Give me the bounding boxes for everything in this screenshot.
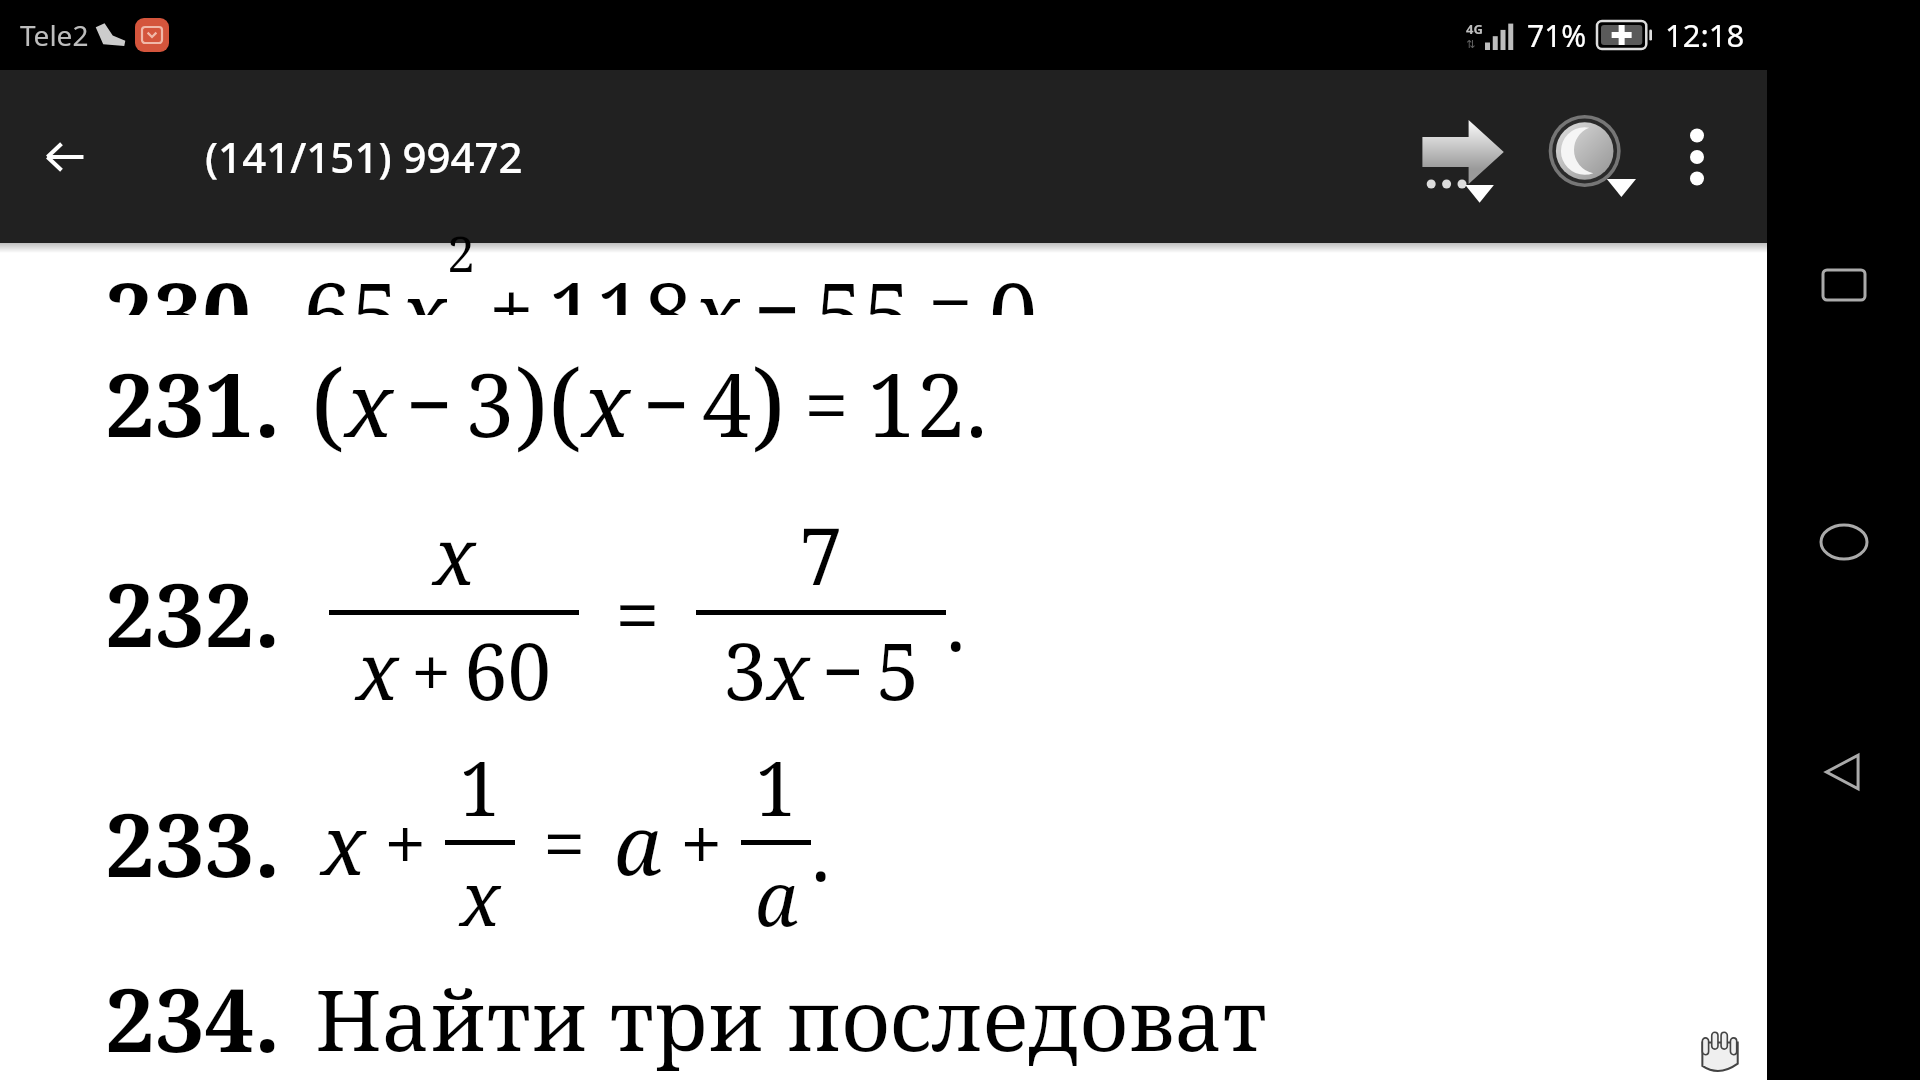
staticText: . [946, 568, 966, 674]
staticText: x [345, 343, 394, 463]
staticText: x [321, 787, 366, 899]
staticText: x [400, 253, 447, 315]
staticText: (141/151) 99472 [205, 128, 523, 185]
button[interactable]: Back [34, 126, 96, 188]
staticText: + [411, 621, 452, 719]
staticText: x [433, 502, 476, 608]
staticText: 233. [105, 783, 281, 903]
staticText: 12. [867, 343, 988, 463]
staticText: 231. [105, 343, 281, 463]
button[interactable]: Night mode [1535, 107, 1643, 207]
staticText: − [406, 348, 453, 457]
staticText: = [615, 558, 660, 667]
staticText: a [755, 847, 798, 948]
staticText: − [754, 253, 801, 315]
staticText: 2 [447, 219, 475, 281]
staticText: 3 [465, 343, 515, 463]
staticText: 4 [702, 343, 752, 463]
staticText: . [811, 798, 831, 904]
button[interactable]: More options [1657, 107, 1737, 207]
staticText: − [822, 621, 864, 719]
staticText: Tele2 [20, 16, 89, 54]
staticText: 7 [799, 502, 843, 608]
button[interactable]: Next page options [1407, 107, 1517, 207]
staticText: )( [515, 337, 582, 468]
staticText: 232. [105, 553, 281, 673]
staticText: x [460, 847, 501, 948]
staticText: 12:18 [1665, 14, 1745, 56]
staticText: = [804, 348, 849, 457]
button[interactable]: Back [1802, 730, 1886, 814]
staticText: 1 [459, 737, 501, 838]
staticText: 234. [105, 958, 281, 1078]
staticText: = [928, 253, 973, 315]
staticText: 118 [548, 253, 693, 315]
staticText: 1 [755, 737, 797, 838]
staticText: 3 [723, 617, 767, 723]
staticText: + [384, 791, 427, 895]
staticText: x [767, 617, 810, 723]
staticText: 0. [989, 253, 1059, 315]
button[interactable]: Home [1802, 500, 1886, 584]
staticText: Найти три последоват [315, 961, 1268, 1075]
staticText: 5 [876, 617, 920, 723]
staticText: 55 [815, 253, 912, 315]
staticText: 230. [105, 253, 277, 315]
button[interactable]: Recent apps [1802, 243, 1886, 327]
staticText: ) [752, 337, 786, 468]
staticText: 60 [464, 617, 552, 723]
staticText: − [643, 348, 690, 457]
staticText: ⇅ [1466, 38, 1476, 51]
staticText: x [693, 253, 740, 315]
staticText: + [489, 253, 534, 315]
staticText: + [680, 791, 723, 895]
staticText: ( [311, 337, 345, 468]
staticText: 71% [1527, 15, 1587, 56]
staticText: 4G [1466, 20, 1483, 38]
staticText: 65 [303, 253, 400, 315]
staticText: x [356, 617, 399, 723]
staticText: x [582, 343, 631, 463]
staticText: a [614, 787, 662, 899]
staticText: = [543, 791, 586, 895]
